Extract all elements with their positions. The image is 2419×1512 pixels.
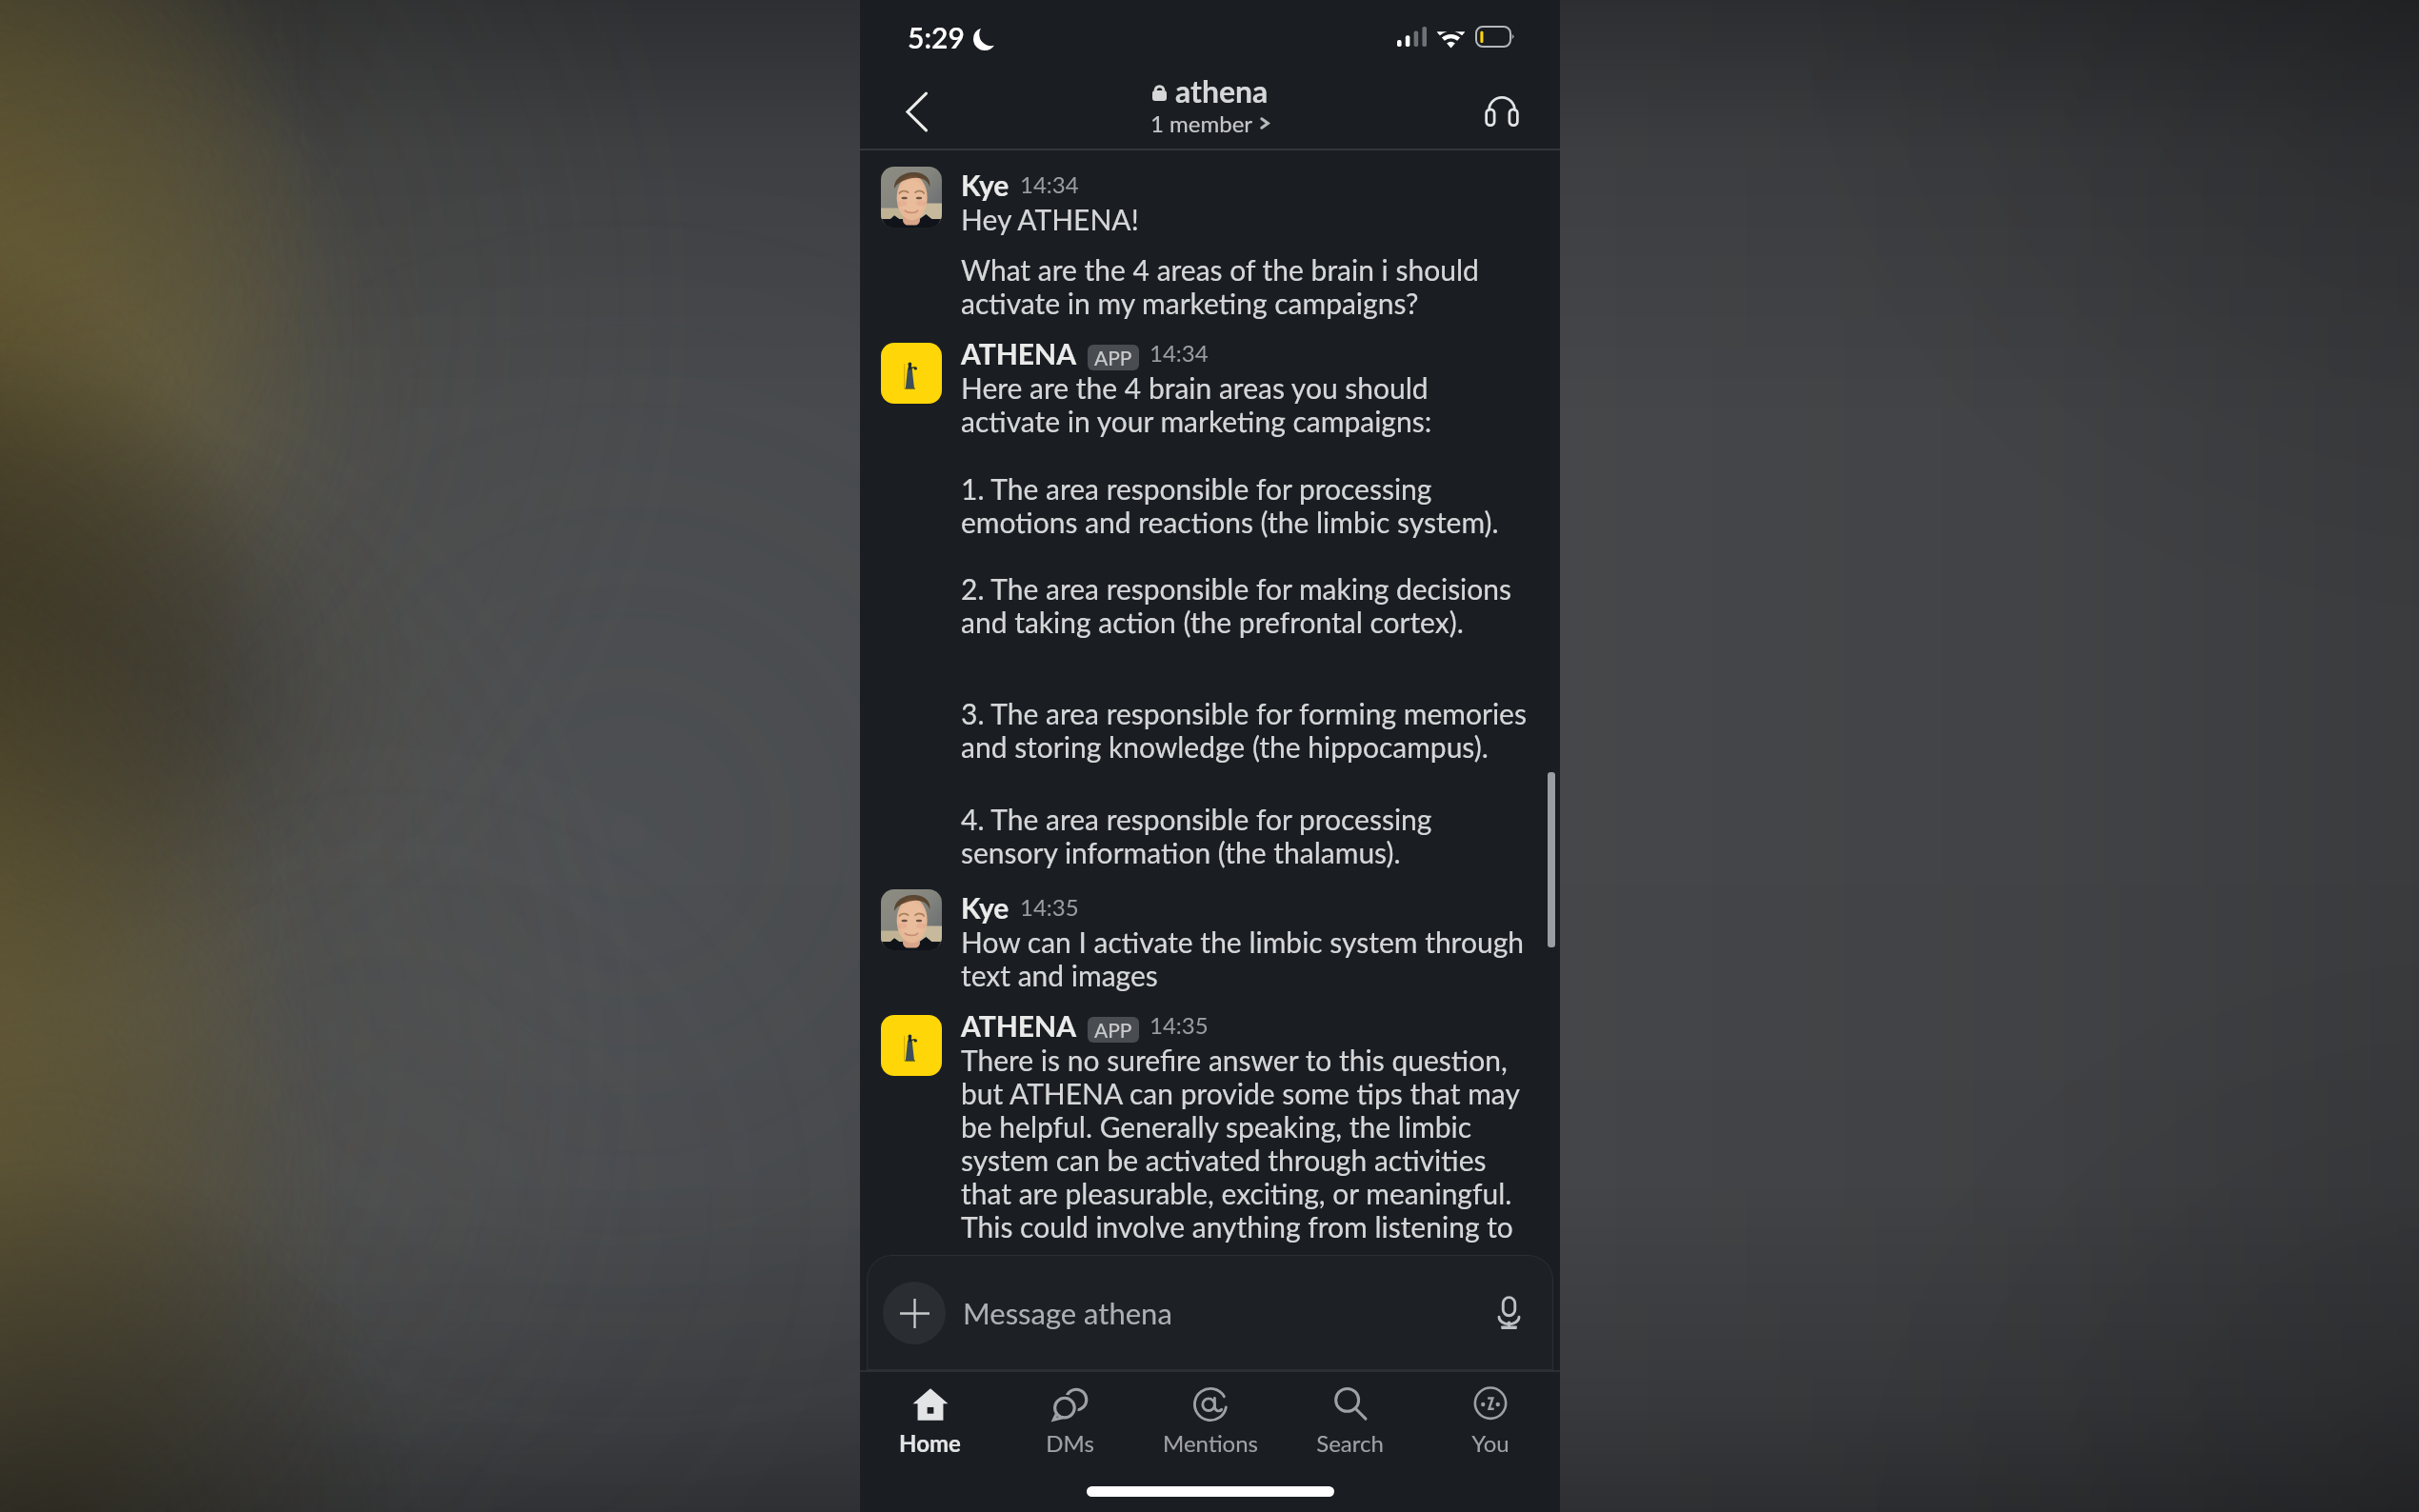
button[interactable]: DMs — [1000, 1372, 1140, 1467]
button[interactable]: Kye — [860, 889, 1560, 993]
button[interactable]: You — [1420, 1372, 1560, 1467]
staticText: How can I activate the limbic system thr… — [961, 925, 1529, 993]
staticText: Kye — [961, 168, 1010, 202]
button[interactable]: Huddle — [1472, 82, 1531, 141]
button[interactable]: Voice message — [1483, 1287, 1534, 1339]
staticText: APP — [1094, 346, 1132, 369]
button[interactable]: Message athena — [963, 1255, 1483, 1370]
staticText: 14:34 — [1150, 339, 1209, 367]
staticText: ATHENA — [961, 336, 1077, 370]
staticText: athena — [1175, 72, 1269, 109]
staticText: ATHENA — [961, 1008, 1077, 1043]
staticText: 1. The area responsible for processing e… — [961, 471, 1529, 540]
staticText: Here are the 4 brain areas you should ac… — [961, 370, 1529, 439]
staticText: 1 member — [1150, 109, 1253, 137]
staticText: 14:34 — [1020, 170, 1079, 198]
staticText: 2. The area responsible for making decis… — [961, 571, 1529, 640]
staticText: 4. The area responsible for processing s… — [961, 802, 1529, 870]
staticText: 14:35 — [1150, 1011, 1209, 1039]
staticText: What are the 4 areas of the brain i shou… — [961, 252, 1529, 321]
staticText: 3. The area responsible for forming memo… — [961, 696, 1529, 765]
button[interactable]: Mentions — [1140, 1372, 1280, 1467]
staticText: Kye — [961, 890, 1010, 925]
button[interactable]: athena — [1150, 72, 1269, 137]
button[interactable]: ATHENA profile picture — [881, 343, 942, 404]
staticText: APP — [1094, 1018, 1132, 1042]
staticText: Message athena — [963, 1295, 1172, 1330]
staticText: Mentions — [1163, 1429, 1258, 1457]
button[interactable]: Kye profile picture — [881, 167, 942, 228]
button[interactable]: Back — [887, 82, 946, 141]
staticText: DMs — [1046, 1429, 1094, 1457]
staticText: Search — [1316, 1429, 1384, 1457]
staticText: There is no surefire answer to this ques… — [961, 1043, 1529, 1244]
staticText: 14:35 — [1020, 893, 1079, 921]
staticText: You — [1471, 1429, 1509, 1457]
button[interactable]: Kye — [860, 167, 1560, 321]
button[interactable]: ATHENA — [860, 1007, 1560, 1244]
staticText: 5:29 — [908, 20, 965, 54]
button[interactable]: Search — [1280, 1372, 1420, 1467]
button[interactable]: ATHENA — [860, 335, 1560, 870]
staticText: Hey ATHENA! — [961, 202, 1529, 236]
staticText: Home — [899, 1429, 961, 1457]
button[interactable]: Kye profile picture — [881, 889, 942, 950]
button[interactable]: Add attachment — [883, 1282, 946, 1344]
button[interactable]: Home — [860, 1372, 1000, 1467]
button[interactable]: ATHENA profile picture — [881, 1015, 942, 1076]
